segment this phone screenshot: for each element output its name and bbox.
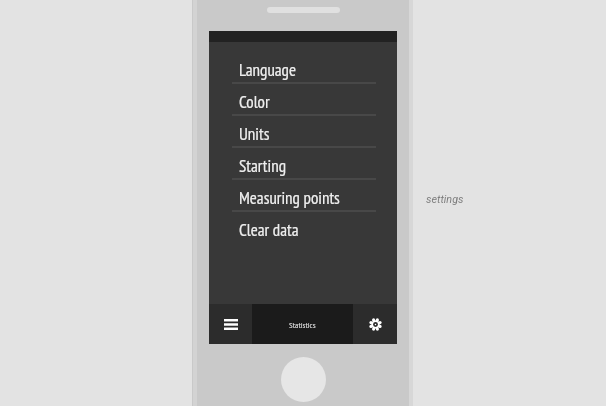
button[interactable]: Units — [209, 116, 397, 148]
button[interactable]: Statistics — [252, 304, 353, 344]
staticText: settings — [426, 193, 464, 206]
button[interactable]: Starting — [209, 148, 397, 180]
button[interactable]: Settings — [353, 304, 397, 344]
staticText: Measuring points — [239, 187, 340, 209]
button[interactable]: Clear data — [209, 212, 397, 244]
staticText: Statistics — [289, 319, 316, 330]
staticText: Units — [239, 123, 270, 145]
button[interactable]: Menu — [209, 304, 252, 344]
staticText: Language — [239, 59, 296, 81]
staticText: Clear data — [239, 219, 299, 241]
button[interactable]: Measuring points — [209, 180, 397, 212]
button[interactable]: Language — [209, 52, 397, 84]
staticText: Starting — [239, 155, 286, 177]
button[interactable]: Color — [209, 84, 397, 116]
staticText: Color — [239, 91, 270, 113]
